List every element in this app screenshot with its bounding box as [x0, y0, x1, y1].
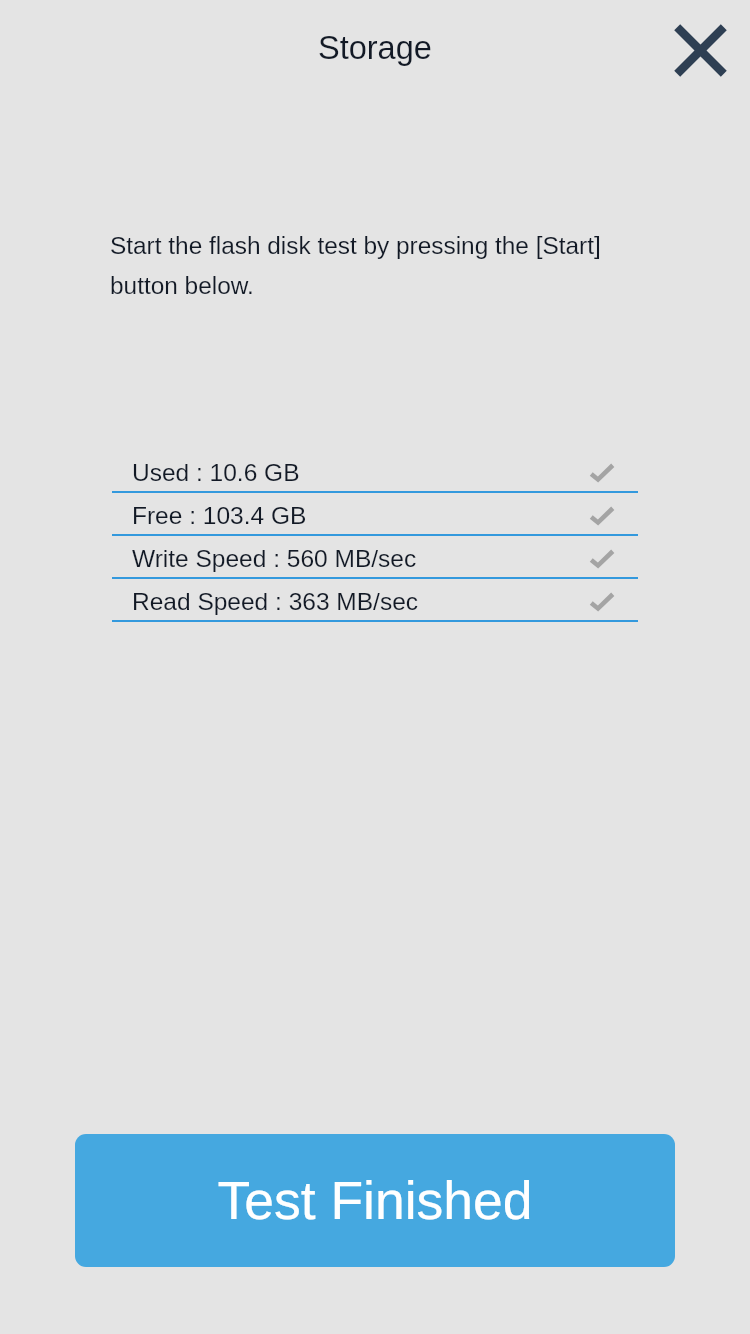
staticText: Read Speed : 363 MB/sec	[132, 588, 419, 615]
button[interactable]: Free : 103.4 GB	[112, 493, 638, 534]
button[interactable]: Read Speed : 363 MB/sec	[112, 579, 638, 620]
staticText: Write Speed : 560 MB/sec	[132, 545, 417, 572]
staticText: Storage	[318, 30, 432, 66]
button[interactable]: Close	[664, 14, 736, 86]
staticText: Used : 10.6 GB	[132, 459, 300, 486]
button[interactable]: Used : 10.6 GB	[112, 450, 638, 491]
staticText: Test Finished	[217, 1171, 533, 1231]
staticText: Start the flash disk test by pressing th…	[110, 232, 625, 299]
button[interactable]: Test Finished	[75, 1134, 675, 1267]
staticText: Free : 103.4 GB	[132, 502, 307, 529]
button[interactable]: Write Speed : 560 MB/sec	[112, 536, 638, 577]
